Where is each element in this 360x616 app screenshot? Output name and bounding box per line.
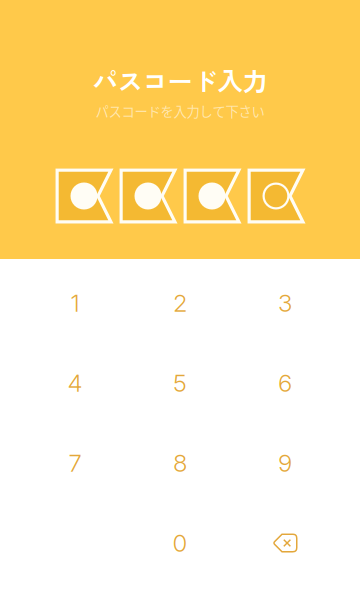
staticText: パスコード入力 — [92, 62, 267, 98]
staticText: パスコードを入力して下さい — [95, 101, 264, 121]
button[interactable]: 5 — [127, 343, 232, 423]
staticText: 5 — [173, 368, 187, 397]
button[interactable]: 3 — [232, 263, 337, 343]
button[interactable]: 6 — [232, 343, 337, 423]
staticText: 1 — [70, 288, 79, 317]
button[interactable]: 1 — [22, 263, 127, 343]
staticText: 4 — [67, 368, 82, 397]
button[interactable]: 0 — [127, 503, 232, 583]
button[interactable]: 4 — [22, 343, 127, 423]
staticText: 7 — [68, 448, 81, 477]
staticText: 0 — [172, 528, 187, 557]
button[interactable]: 2 — [127, 263, 232, 343]
button[interactable]: 9 — [232, 423, 337, 503]
staticText: 3 — [278, 288, 292, 317]
button[interactable]: 8 — [127, 423, 232, 503]
staticText: 2 — [173, 288, 187, 317]
staticText: 8 — [173, 448, 187, 477]
staticText: 6 — [278, 368, 292, 397]
button[interactable]: Delete — [232, 503, 337, 583]
button[interactable]: 7 — [22, 423, 127, 503]
staticText: 9 — [278, 448, 292, 477]
